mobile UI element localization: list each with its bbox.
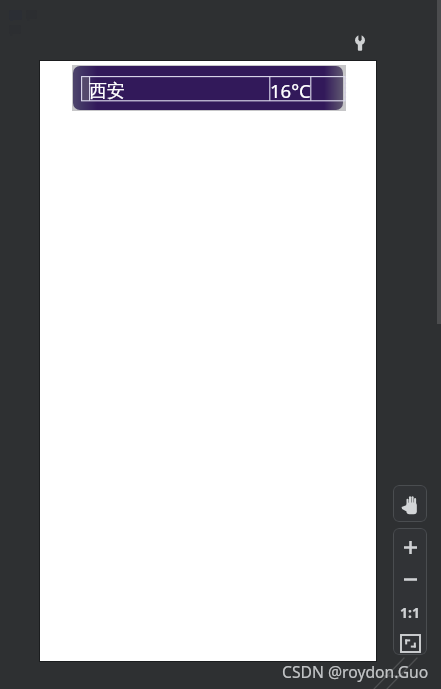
staticText: CSDN @roydon.Guo xyxy=(282,661,429,682)
button[interactable]: Zoom in xyxy=(393,531,427,563)
button[interactable]: Zoom to fit xyxy=(393,627,427,659)
staticText: 16°C xyxy=(270,78,311,103)
button[interactable]: Pan xyxy=(393,485,427,522)
button[interactable]: Design surface settings xyxy=(350,33,370,53)
button[interactable]: Zoom out xyxy=(393,563,427,595)
button[interactable]: App bar xyxy=(73,66,343,110)
staticText: 1:1 xyxy=(400,603,420,622)
staticText: 西安 xyxy=(89,80,125,103)
button[interactable]: 1:1 xyxy=(393,596,427,628)
